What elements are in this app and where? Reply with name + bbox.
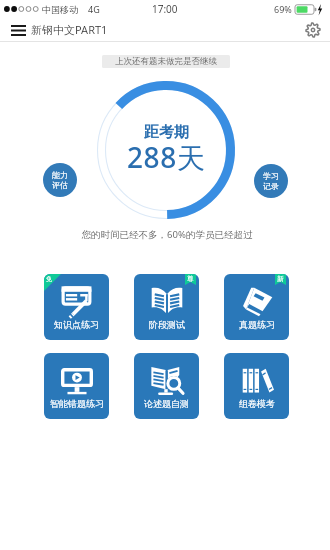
staticText: 智能错题练习 — [50, 398, 104, 409]
staticText: 17:00 — [152, 2, 178, 16]
staticText: 阶段测试 — [149, 319, 185, 330]
button[interactable]: 免 — [44, 274, 109, 340]
staticText: 能力 — [52, 170, 68, 180]
staticText: 评估 — [52, 180, 68, 190]
staticText: 上次还有题未做完是否继续 — [115, 56, 217, 67]
staticText: 您的时间已经不多，60%的学员已经超过 — [2, 228, 330, 241]
button[interactable]: 尊 — [134, 274, 199, 340]
staticText: 新 — [277, 275, 284, 283]
staticText: 中国移动 — [42, 4, 78, 15]
staticText: 69% — [274, 3, 292, 15]
button[interactable]: 新 — [224, 274, 289, 340]
staticText: 288天 — [127, 138, 206, 176]
staticText: 真题练习 — [239, 319, 275, 330]
staticText: 知识点练习 — [54, 319, 99, 330]
staticText: 4G — [88, 3, 100, 15]
button[interactable]: 组卷模考 — [224, 353, 289, 419]
button[interactable]: Settings — [302, 19, 324, 41]
button[interactable]: 智能错题练习 — [44, 353, 109, 419]
button[interactable]: 论述题自测 — [134, 353, 199, 419]
button[interactable]: 学习 — [254, 164, 288, 198]
staticText: 距考期 — [144, 123, 189, 142]
staticText: 尊 — [187, 275, 194, 283]
button[interactable]: 上次还有题未做完是否继续 — [102, 55, 230, 68]
staticText: 学习 — [263, 171, 279, 181]
staticText: 新钢中文PART1 — [31, 22, 108, 37]
button[interactable]: 能力 — [43, 163, 77, 197]
staticText: 记录 — [263, 181, 279, 191]
staticText: 论述题自测 — [144, 398, 189, 409]
staticText: 免 — [46, 275, 52, 283]
button[interactable]: Menu — [7, 20, 29, 40]
staticText: 组卷模考 — [239, 398, 275, 409]
